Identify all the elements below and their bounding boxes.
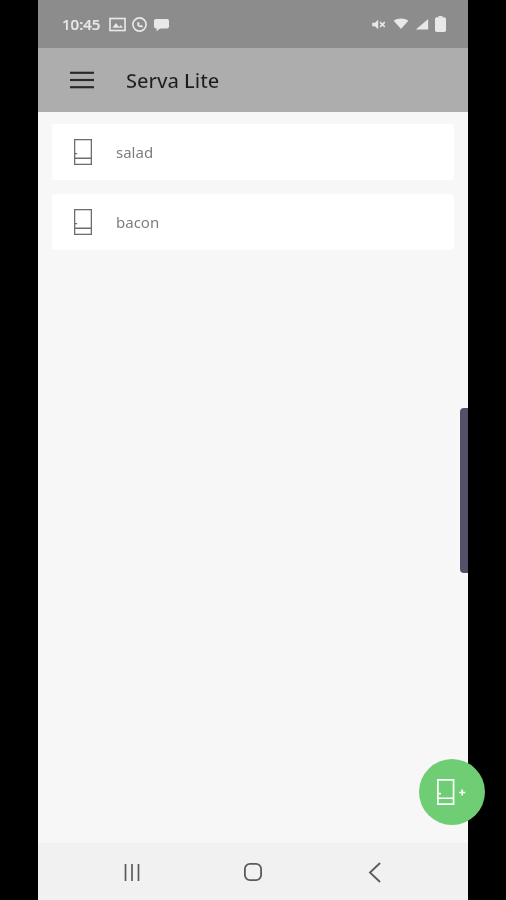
button[interactable]: salad [52, 124, 454, 180]
staticText: salad [116, 142, 154, 162]
staticText: 10:45 [62, 14, 101, 34]
button[interactable]: Home [225, 844, 281, 900]
button[interactable]: Back [347, 844, 403, 900]
staticText: Serva Lite [126, 67, 220, 94]
button[interactable]: bacon [52, 194, 454, 250]
staticText: bacon [116, 212, 160, 232]
button[interactable]: Recent apps [104, 844, 160, 900]
button[interactable]: Add device [419, 759, 485, 825]
button[interactable]: Open navigation menu [58, 56, 106, 104]
